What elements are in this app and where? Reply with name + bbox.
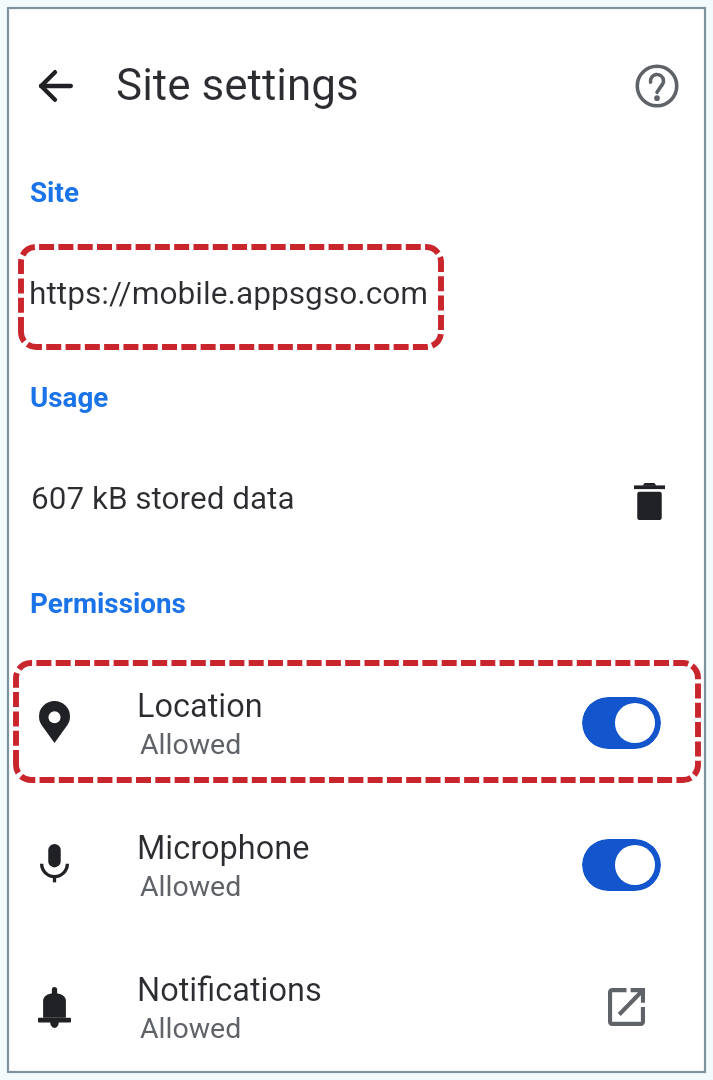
button[interactable]: 607 kB stored data (0, 458, 713, 544)
button[interactable]: Microphone permission toggle (582, 839, 661, 891)
button[interactable]: Back (24, 54, 88, 118)
staticText: Microphone (137, 829, 310, 867)
staticText: Allowed (140, 1012, 242, 1045)
staticText: Notifications (137, 971, 322, 1009)
staticText: Site (30, 176, 79, 209)
staticText: https://mobile.appsgso.com (29, 275, 429, 312)
staticText: 607 kB stored data (31, 480, 295, 517)
staticText: Permissions (30, 587, 186, 620)
staticText: Site settings (116, 59, 359, 111)
button[interactable]: https://mobile.appsgso.com (20, 244, 446, 342)
button[interactable]: Help (625, 54, 689, 118)
button[interactable]: Microphone (0, 794, 713, 926)
button[interactable]: Open Notifications settings (598, 979, 654, 1035)
button[interactable]: Site settings (116, 39, 359, 131)
button[interactable]: Delete stored data (622, 474, 676, 528)
button[interactable]: Location (0, 652, 713, 784)
button[interactable]: Notifications (0, 936, 713, 1068)
staticText: Allowed (140, 870, 242, 903)
staticText: Usage (30, 381, 109, 414)
button[interactable]: Location permission toggle (582, 697, 661, 749)
staticText: Allowed (140, 728, 242, 761)
staticText: Location (137, 687, 263, 725)
